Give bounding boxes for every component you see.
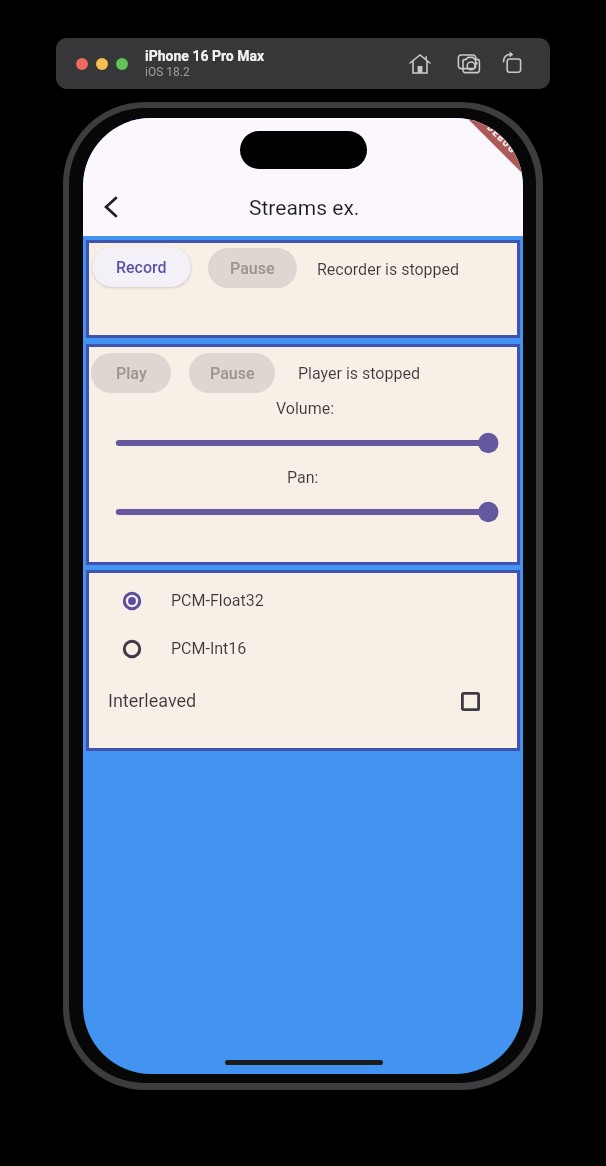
staticText: Volume: — [276, 399, 335, 418]
button[interactable]: Back — [89, 185, 133, 229]
button[interactable]: Pause — [208, 248, 297, 288]
staticText: Pause — [210, 364, 255, 383]
staticText: Play — [116, 364, 147, 383]
staticText: iPhone 16 Pro Max — [145, 48, 265, 64]
button[interactable]: PCM-Float32 — [89, 575, 517, 623]
staticText: Pan: — [287, 468, 319, 487]
button[interactable]: Close — [76, 58, 88, 70]
button[interactable]: Maximise — [116, 58, 128, 70]
button[interactable]: Record — [92, 247, 191, 287]
button[interactable]: Screen record — [498, 48, 526, 76]
button[interactable]: Screenshot — [455, 50, 483, 78]
staticText: iOS 18.2 — [145, 65, 190, 79]
staticText: PCM-Float32 — [171, 591, 264, 610]
button[interactable]: Pause — [189, 353, 275, 393]
staticText: Pause — [230, 259, 275, 278]
button[interactable]: Slider — [89, 498, 517, 526]
staticText: Interleaved — [108, 690, 197, 711]
button[interactable]: PCM-Int16 — [89, 623, 517, 671]
staticText: PCM-Int16 — [171, 639, 247, 658]
staticText: Player is stopped — [298, 364, 420, 383]
button[interactable]: Interleaved — [89, 671, 517, 725]
staticText: Recorder is stopped — [317, 260, 460, 279]
button[interactable]: Minimise — [96, 58, 108, 70]
button[interactable]: Play — [91, 353, 171, 393]
button[interactable]: Slider — [89, 429, 517, 457]
staticText: Record — [116, 258, 167, 277]
staticText: Streams ex. — [249, 196, 360, 221]
button[interactable]: Home — [406, 50, 434, 78]
staticText: DEBUG — [484, 122, 518, 156]
